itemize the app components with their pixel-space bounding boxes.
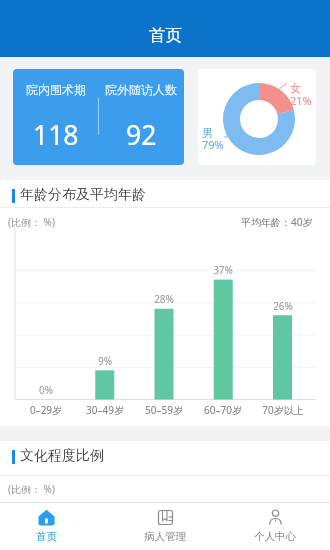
- staticText: 首页: [149, 25, 182, 46]
- staticText: 26%: [253, 299, 313, 313]
- staticText: (比例： %): [8, 482, 55, 496]
- staticText: 首页: [36, 530, 57, 543]
- staticText: 院外随访人数: [105, 82, 177, 97]
- button[interactable]: 院内围术期: [13, 69, 184, 165]
- staticText: 79%: [202, 137, 224, 152]
- staticText: 年龄分布及平均年龄: [20, 186, 146, 204]
- button[interactable]: 女: [198, 69, 316, 165]
- staticText: 118: [33, 117, 79, 153]
- button[interactable]: 病人管理: [125, 509, 205, 549]
- button[interactable]: 个人中心: [235, 509, 315, 549]
- staticText: (比例： %): [8, 215, 55, 229]
- staticText: 28%: [134, 292, 194, 306]
- staticText: 文化程度比例: [20, 447, 104, 465]
- staticText: 女: [290, 81, 301, 95]
- staticText: 21%: [290, 93, 312, 108]
- staticText: 0%: [16, 383, 76, 397]
- staticText: 37%: [193, 263, 253, 277]
- staticText: 个人中心: [254, 530, 296, 543]
- staticText: 60–70岁: [193, 403, 253, 417]
- staticText: 92: [126, 117, 157, 153]
- staticText: 平均年龄：40岁: [241, 215, 313, 229]
- staticText: 70岁以上: [253, 403, 313, 417]
- button[interactable]: 首页: [6, 509, 86, 549]
- staticText: 50–59岁: [134, 403, 194, 417]
- staticText: 病人管理: [144, 530, 186, 543]
- staticText: 院内围术期: [26, 82, 86, 97]
- staticText: 男: [202, 126, 213, 140]
- staticText: 0–29岁: [16, 403, 76, 417]
- staticText: 30–49岁: [75, 403, 135, 417]
- staticText: 9%: [75, 354, 135, 368]
